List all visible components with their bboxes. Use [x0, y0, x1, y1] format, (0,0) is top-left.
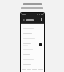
- button[interactable]: [21, 47, 44, 52]
- button[interactable]: [21, 52, 44, 57]
- button[interactable]: [21, 41, 44, 47]
- button[interactable]: [21, 31, 44, 36]
- button[interactable]: [21, 57, 44, 62]
- button[interactable]: More options: [40, 18, 43, 21]
- button[interactable]: [21, 36, 44, 41]
- button[interactable]: Back: [22, 18, 25, 21]
- button[interactable]: [21, 62, 44, 67]
- button[interactable]: [21, 26, 44, 31]
